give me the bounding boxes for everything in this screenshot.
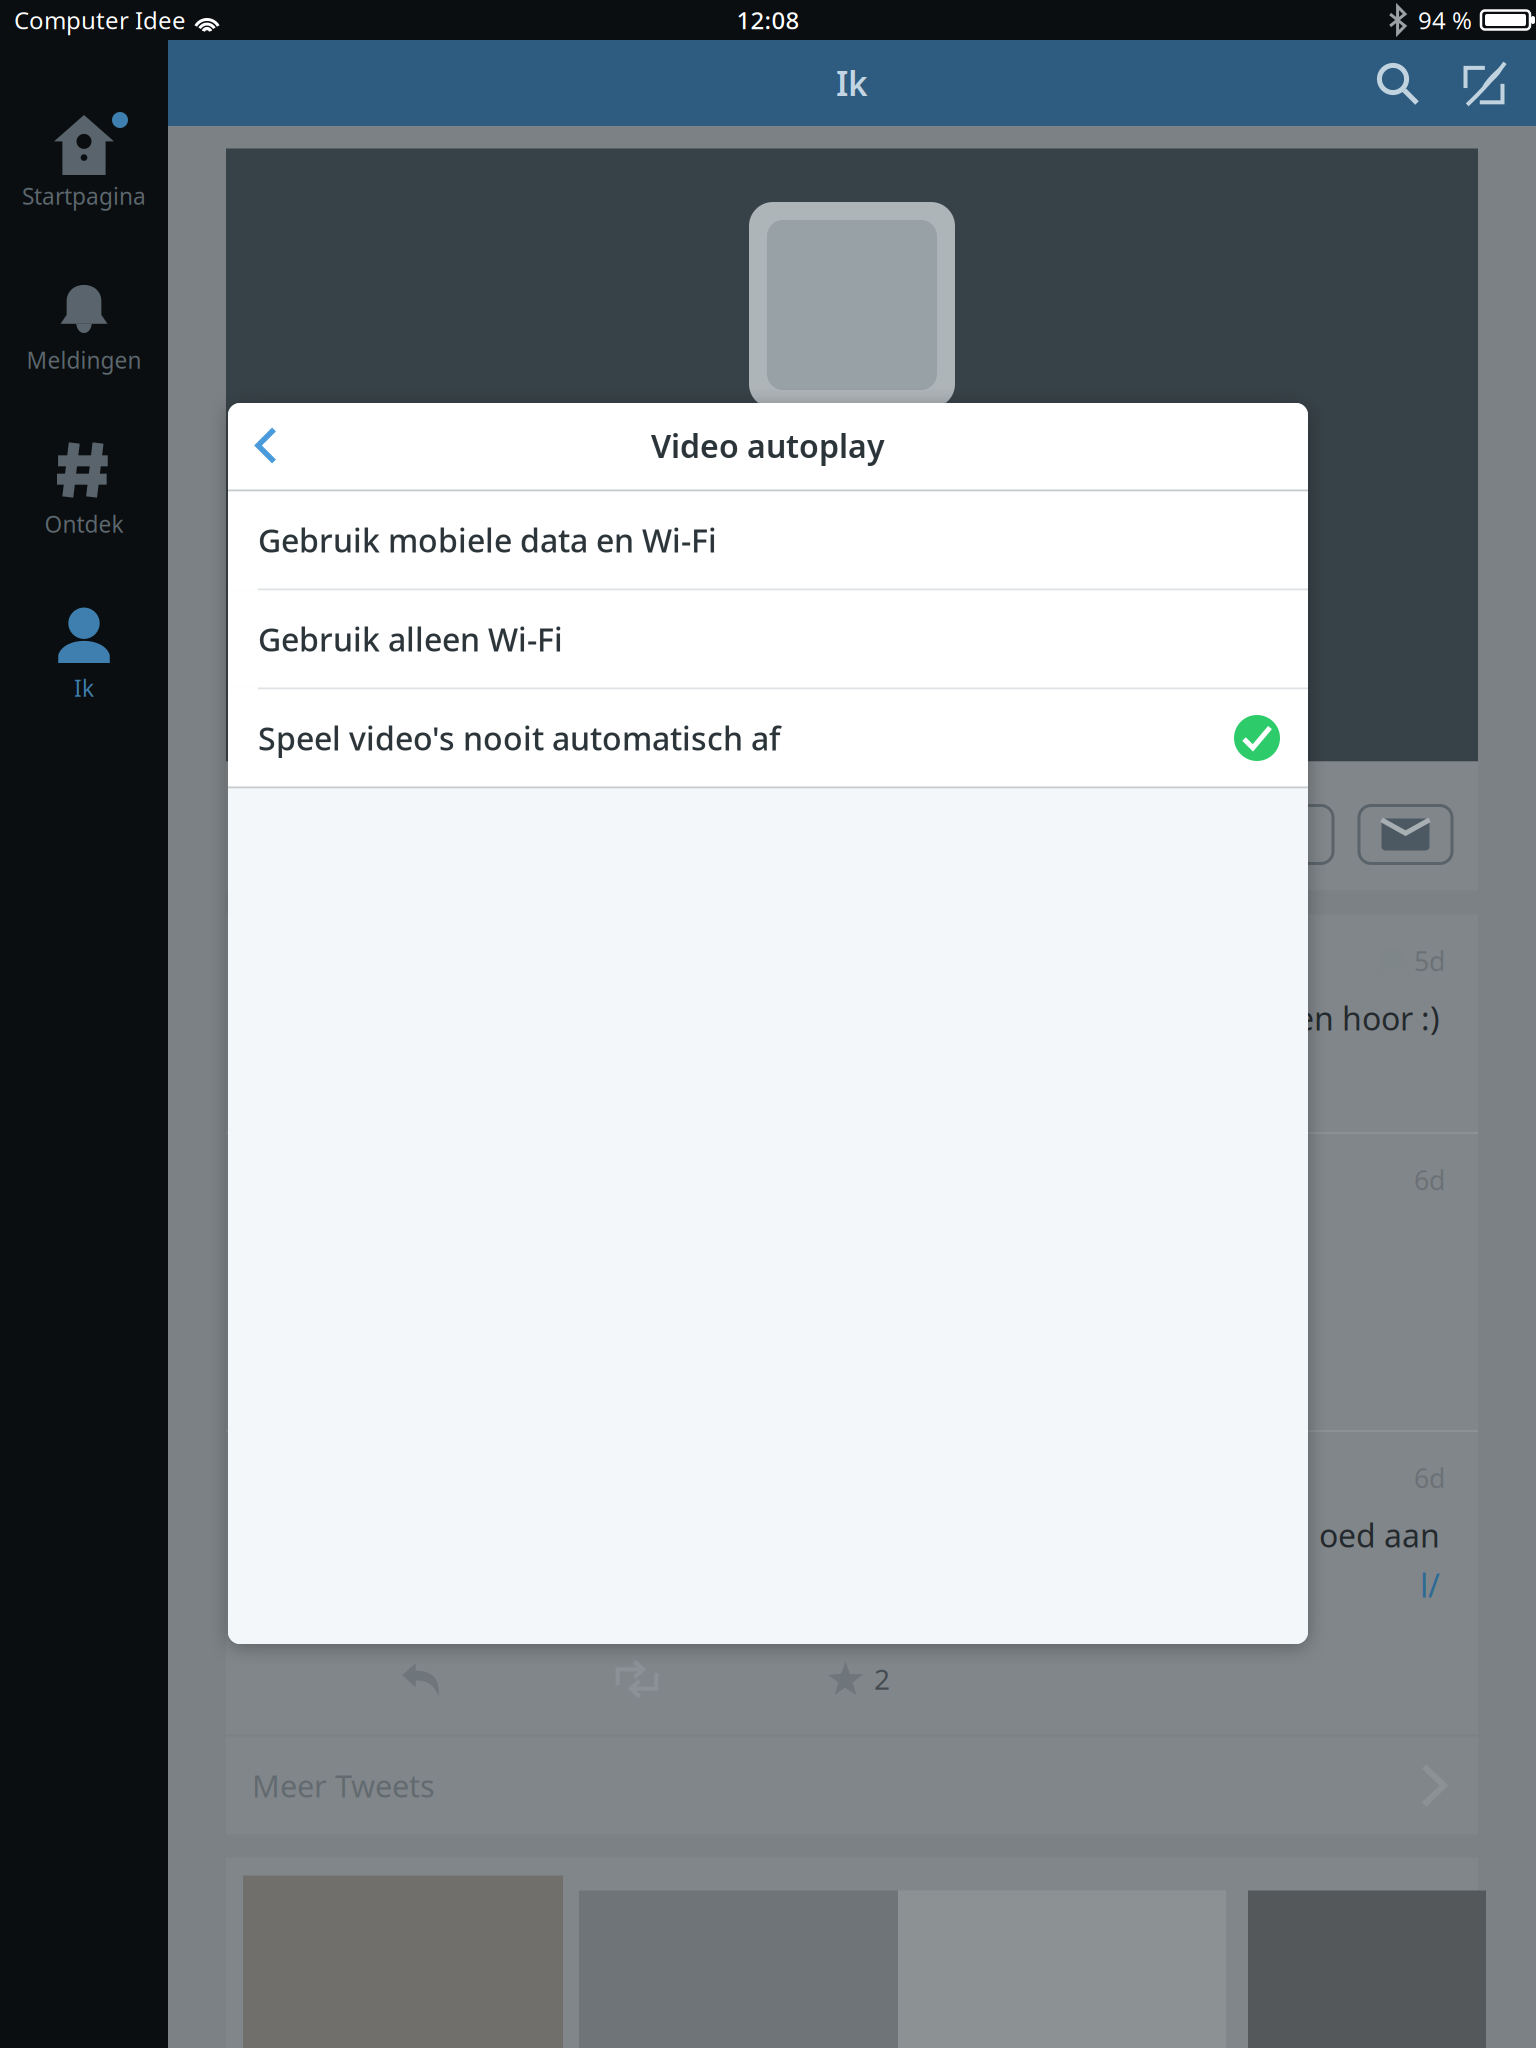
staticText: Meldingen <box>26 345 141 375</box>
staticText: Speel video's nooit automatisch af <box>258 717 780 759</box>
staticText: 94 % <box>1418 4 1472 36</box>
staticText: Computer Idee <box>14 4 186 36</box>
button[interactable]: Ontdek <box>0 443 168 607</box>
staticText: Gebruik mobiele data en Wi-Fi <box>258 519 717 561</box>
staticText: Ik <box>836 61 868 105</box>
button[interactable]: Ik <box>0 607 168 771</box>
button[interactable]: Gebruik alleen Wi-Fi <box>228 590 1308 687</box>
button[interactable]: Meldingen <box>0 279 168 443</box>
staticText: 6d <box>1414 1460 1445 1496</box>
staticText: Ontdek <box>44 509 123 539</box>
staticText: oed aan <box>1319 1514 1440 1556</box>
staticText: 5d <box>1414 943 1445 979</box>
button[interactable]: Search <box>1355 40 1439 126</box>
staticText: Video autoplay <box>651 424 885 467</box>
button[interactable]: Back <box>228 401 304 489</box>
button[interactable]: More <box>1240 805 1333 863</box>
button[interactable]: Gebruik mobiele data en Wi-Fi <box>228 491 1308 588</box>
staticText: en hoor :) <box>1296 997 1440 1039</box>
button[interactable]: Compose <box>1439 40 1529 126</box>
staticText: 12:08 <box>736 4 799 36</box>
staticText: 2 <box>874 1660 890 1698</box>
staticText: Startpagina <box>22 181 146 211</box>
button[interactable]: Speel video's nooit automatisch af <box>228 689 1308 786</box>
staticText: Gebruik alleen Wi-Fi <box>258 618 563 660</box>
staticText: 6d <box>1414 1162 1445 1198</box>
button[interactable]: Message <box>1359 805 1452 863</box>
button[interactable]: Startpagina <box>0 115 168 279</box>
staticText: Ik <box>74 673 94 703</box>
staticText: Meer Tweets <box>252 1765 435 1806</box>
staticText: l/ <box>1420 1564 1440 1606</box>
